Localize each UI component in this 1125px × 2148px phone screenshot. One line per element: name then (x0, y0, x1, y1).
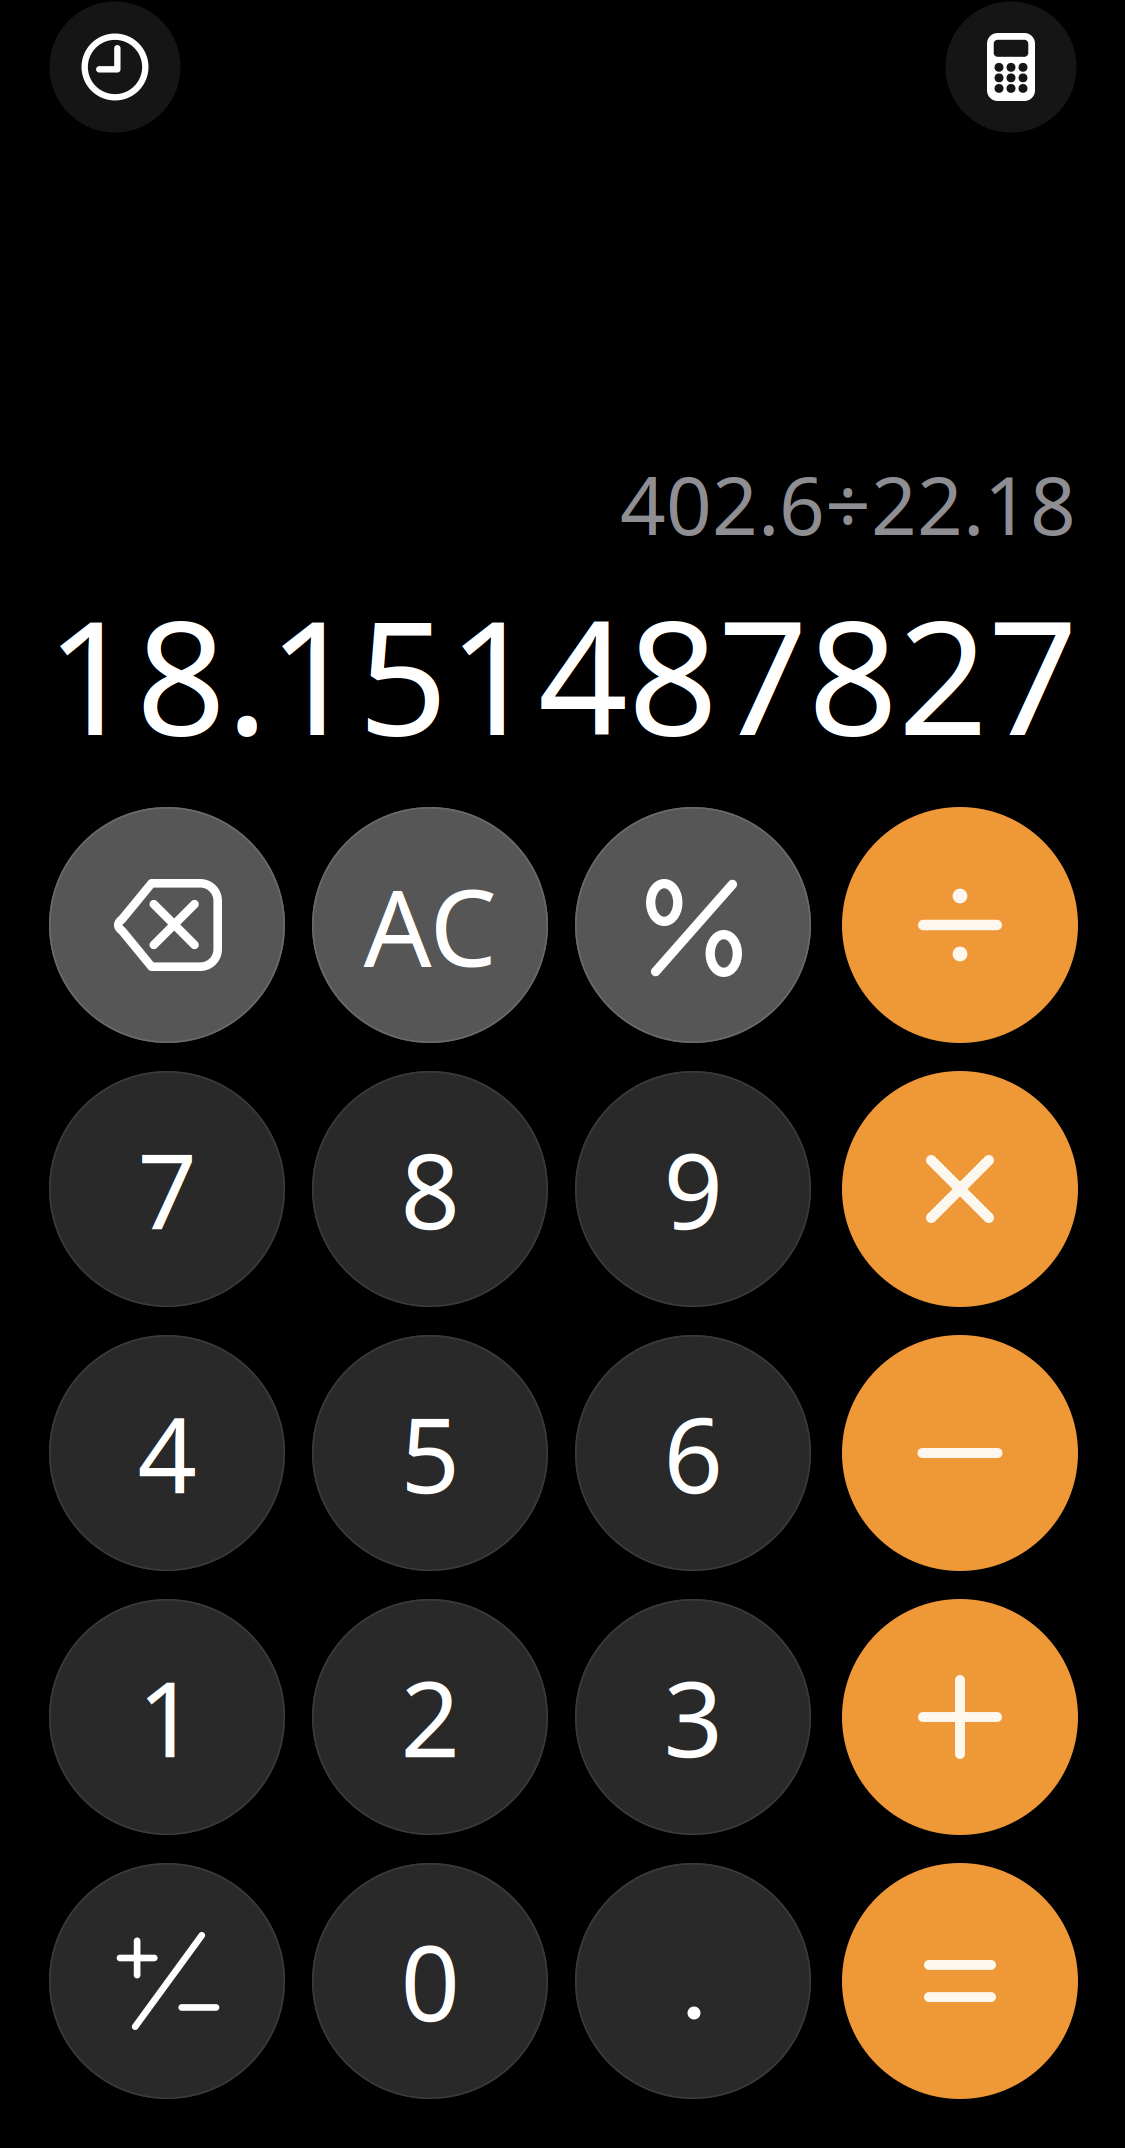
staticText: 4 (137, 1384, 196, 1522)
button[interactable]: Percent (575, 807, 811, 1043)
staticText: AC (363, 854, 496, 996)
staticText: 8 (400, 1120, 459, 1258)
button[interactable]: Subtract (842, 1335, 1078, 1571)
staticText: 2 (400, 1648, 459, 1786)
button[interactable]: 4 (49, 1335, 285, 1571)
button[interactable]: Decimal point (575, 1863, 811, 2099)
staticText: 3 (663, 1648, 722, 1786)
button[interactable]: Divide (842, 807, 1078, 1043)
button[interactable]: Calculator (945, 1, 1076, 132)
staticText: 6 (663, 1384, 722, 1522)
button[interactable]: 8 (312, 1071, 548, 1307)
button[interactable]: 0 (312, 1863, 548, 2099)
button[interactable]: Plus minus (49, 1863, 285, 2099)
staticText: 7 (137, 1120, 196, 1258)
button[interactable]: Equals (842, 1863, 1078, 2099)
button[interactable]: 7 (49, 1071, 285, 1307)
staticText: 402.6÷22.18 (620, 451, 1076, 557)
button[interactable]: 5 (312, 1335, 548, 1571)
button[interactable]: Add (842, 1599, 1078, 1835)
staticText: 0 (400, 1912, 459, 2050)
button[interactable]: Multiply (842, 1071, 1078, 1307)
button[interactable]: 2 (312, 1599, 548, 1835)
button[interactable]: 1 (49, 1599, 285, 1835)
staticText: 5 (400, 1384, 459, 1522)
button[interactable]: 3 (575, 1599, 811, 1835)
staticText: 18.151487827 (46, 569, 1078, 778)
button[interactable]: Delete (49, 807, 285, 1043)
button[interactable]: History (49, 1, 180, 132)
button[interactable]: All clear (312, 807, 548, 1043)
staticText: 9 (663, 1120, 722, 1258)
button[interactable]: 6 (575, 1335, 811, 1571)
button[interactable]: 9 (575, 1071, 811, 1307)
staticText: 1 (137, 1648, 196, 1786)
